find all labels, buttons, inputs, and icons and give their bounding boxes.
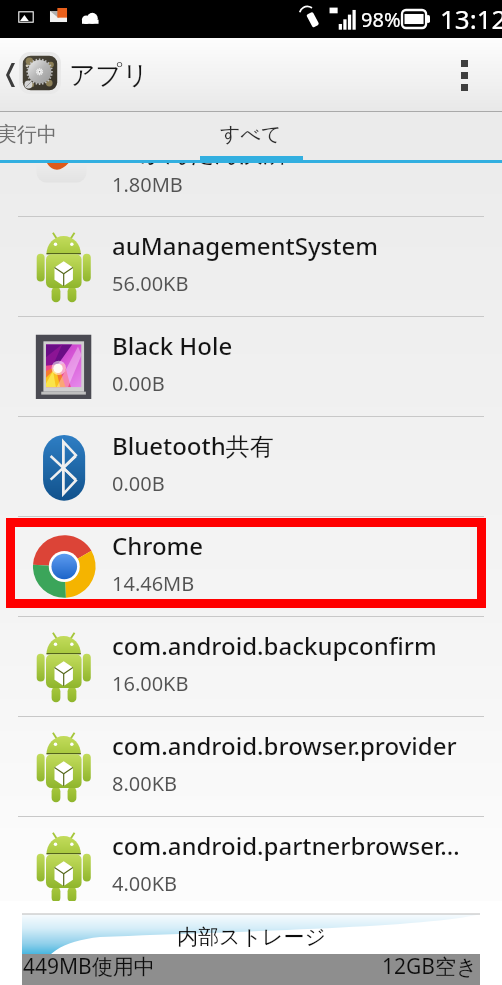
button[interactable]: More options bbox=[434, 38, 494, 112]
staticText: 12GB空き bbox=[382, 952, 478, 981]
button[interactable]: すべて bbox=[196, 112, 306, 157]
staticText: Bluetooth共有 bbox=[112, 429, 274, 462]
staticText: 実行中 bbox=[0, 122, 57, 147]
button[interactable]: Back bbox=[0, 38, 20, 112]
staticText: 8.00KB bbox=[112, 770, 178, 797]
button[interactable]: 実行中 bbox=[0, 112, 82, 157]
staticText: com.android.browser.provider bbox=[112, 729, 457, 762]
button[interactable]: Chrome bbox=[0, 517, 502, 616]
staticText: 1.80MB bbox=[112, 171, 183, 198]
staticText: auManagementSystem bbox=[112, 229, 378, 262]
button[interactable]: Bluetooth共有 bbox=[0, 417, 502, 516]
button[interactable]: com.android.partnerbrowser… bbox=[0, 817, 502, 916]
staticText: 14.46MB bbox=[112, 570, 195, 597]
button[interactable]: auManagementSystem bbox=[0, 217, 502, 316]
staticText: 0.00B bbox=[112, 470, 165, 497]
staticText: 98% bbox=[361, 6, 401, 33]
staticText: アプリ bbox=[69, 59, 149, 92]
staticText: 0.00B bbox=[112, 370, 165, 397]
staticText: 16.00KB bbox=[112, 670, 189, 697]
staticText: 13:12 bbox=[440, 1, 502, 36]
staticText: 56.00KB bbox=[112, 270, 189, 297]
staticText: auかんたん決済 bbox=[112, 163, 288, 169]
staticText: 449MB使用中 bbox=[23, 952, 155, 981]
staticText: すべて bbox=[220, 122, 282, 147]
button[interactable]: com.android.browser.provider bbox=[0, 717, 502, 816]
staticText: 内部ストレージ bbox=[177, 924, 326, 950]
staticText: Chrome bbox=[112, 529, 204, 562]
staticText: com.android.backupconfirm bbox=[112, 629, 437, 662]
button[interactable]: com.android.backupconfirm bbox=[0, 617, 502, 716]
staticText: com.android.partnerbrowser… bbox=[112, 829, 460, 862]
button[interactable]: Black Hole bbox=[0, 317, 502, 416]
button[interactable]: auかんたん決済 bbox=[0, 163, 502, 216]
staticText: Black Hole bbox=[112, 329, 233, 362]
staticText: 4.00KB bbox=[112, 870, 178, 897]
